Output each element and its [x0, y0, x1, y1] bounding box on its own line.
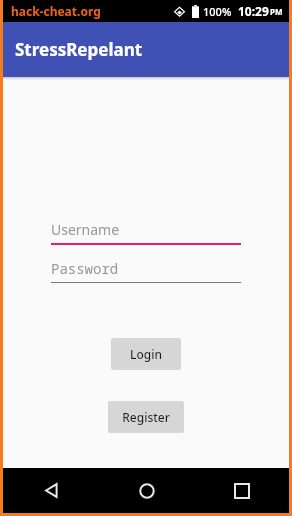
- staticText: 10:29: [238, 3, 269, 19]
- staticText: Register: [122, 409, 170, 425]
- staticText: PM: [270, 6, 283, 17]
- staticText: Login: [130, 346, 162, 362]
- button[interactable]: Password: [51, 259, 241, 283]
- staticText: hack-cheat.org: [11, 3, 101, 19]
- button[interactable]: Home: [99, 468, 194, 513]
- staticText: Username: [51, 220, 120, 239]
- staticText: StressRepelant: [15, 38, 143, 61]
- button[interactable]: Register: [108, 401, 184, 433]
- button[interactable]: Back: [3, 468, 99, 513]
- button[interactable]: Login: [111, 338, 181, 370]
- button[interactable]: Username: [51, 220, 241, 245]
- staticText: 100%: [203, 4, 232, 19]
- button[interactable]: Recent apps: [194, 468, 289, 513]
- staticText: Password: [51, 259, 119, 278]
